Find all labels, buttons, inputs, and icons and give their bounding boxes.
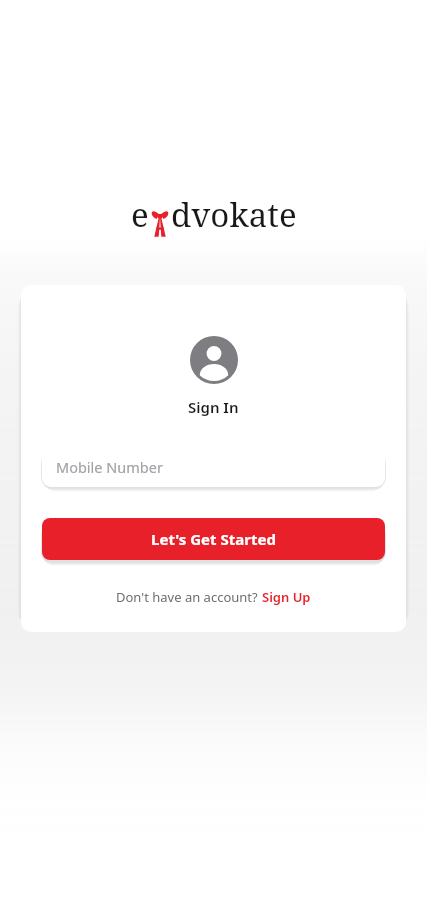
staticText: Sign Up	[262, 588, 311, 606]
staticText: e	[131, 192, 149, 237]
staticText: Mobile Number	[56, 457, 163, 477]
other: Account	[190, 336, 238, 384]
staticText: Sign In	[188, 397, 239, 417]
button[interactable]: Let's Get Started	[42, 518, 385, 560]
button[interactable]: Mobile Number	[42, 447, 385, 487]
button[interactable]: Sign Up	[262, 588, 311, 606]
staticText: Don't have an account?	[116, 588, 262, 606]
staticText: Let's Get Started	[151, 529, 276, 549]
staticText: dvokate	[171, 192, 297, 237]
